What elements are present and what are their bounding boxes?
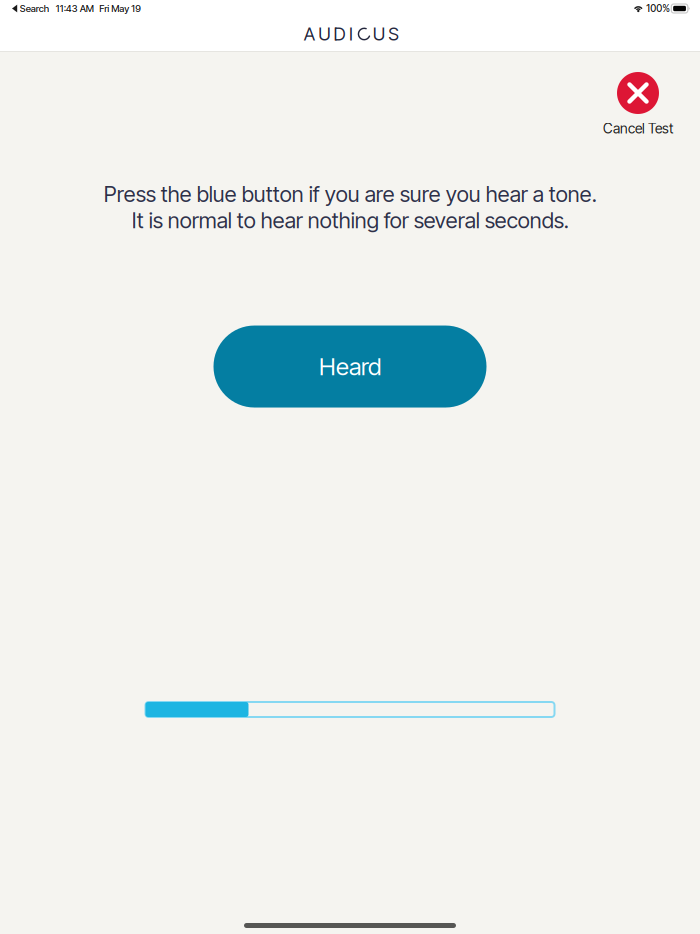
staticText: US xyxy=(373,23,399,45)
staticText: 100% xyxy=(646,2,670,14)
staticText: Press the blue button if you are sure yo… xyxy=(103,181,596,233)
button[interactable]: Cancel Test xyxy=(603,72,673,137)
staticText: Heard xyxy=(319,352,381,381)
staticText: Search xyxy=(20,3,49,14)
staticText: 11:43 AM xyxy=(56,3,94,14)
staticText: Cancel Test xyxy=(603,120,673,137)
button[interactable]: Heard xyxy=(213,325,486,407)
staticText: Fri May 19 xyxy=(99,3,141,14)
staticText: AUDI xyxy=(304,23,353,45)
